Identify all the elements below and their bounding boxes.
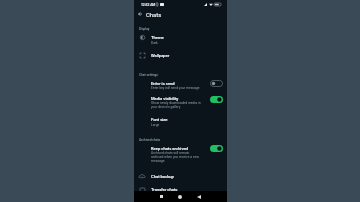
button[interactable] [134,184,227,190]
button[interactable] [134,33,227,47]
button[interactable] [134,116,227,128]
button[interactable]: Home [175,191,185,202]
staticText: Archived chats [139,138,161,142]
staticText: Show newly downloaded media in your devi… [151,101,201,109]
staticText: Theme [151,35,164,40]
staticText: Keep chats archived [151,146,188,151]
button[interactable] [134,144,227,166]
staticText: Media visibility [151,96,179,101]
staticText: Chats [146,12,162,19]
button[interactable]: Recent apps [156,191,166,202]
button[interactable]: Back [135,9,144,18]
staticText: Transfer chats [151,187,178,192]
button[interactable] [134,171,227,183]
button[interactable]: Toggle off [210,80,223,87]
button[interactable] [134,50,227,62]
button[interactable]: Toggle on [210,145,223,152]
staticText: Enter key will send your message [151,86,200,90]
button[interactable]: Back [194,191,204,202]
staticText: 12:52 AM [141,3,156,7]
staticText: Dark [151,41,158,45]
button[interactable] [134,94,227,110]
staticText: Wallpaper [151,53,170,58]
staticText: Large [151,123,160,127]
button[interactable] [134,79,227,91]
staticText: Display [139,27,150,31]
staticText: Archived chats will remain archived when… [151,151,199,163]
staticText: Chat settings [139,73,158,77]
staticText: Font size [151,117,168,122]
staticText: Enter is send [151,81,175,86]
staticText: Chat backup [151,174,174,179]
button[interactable]: Toggle on [210,96,223,103]
